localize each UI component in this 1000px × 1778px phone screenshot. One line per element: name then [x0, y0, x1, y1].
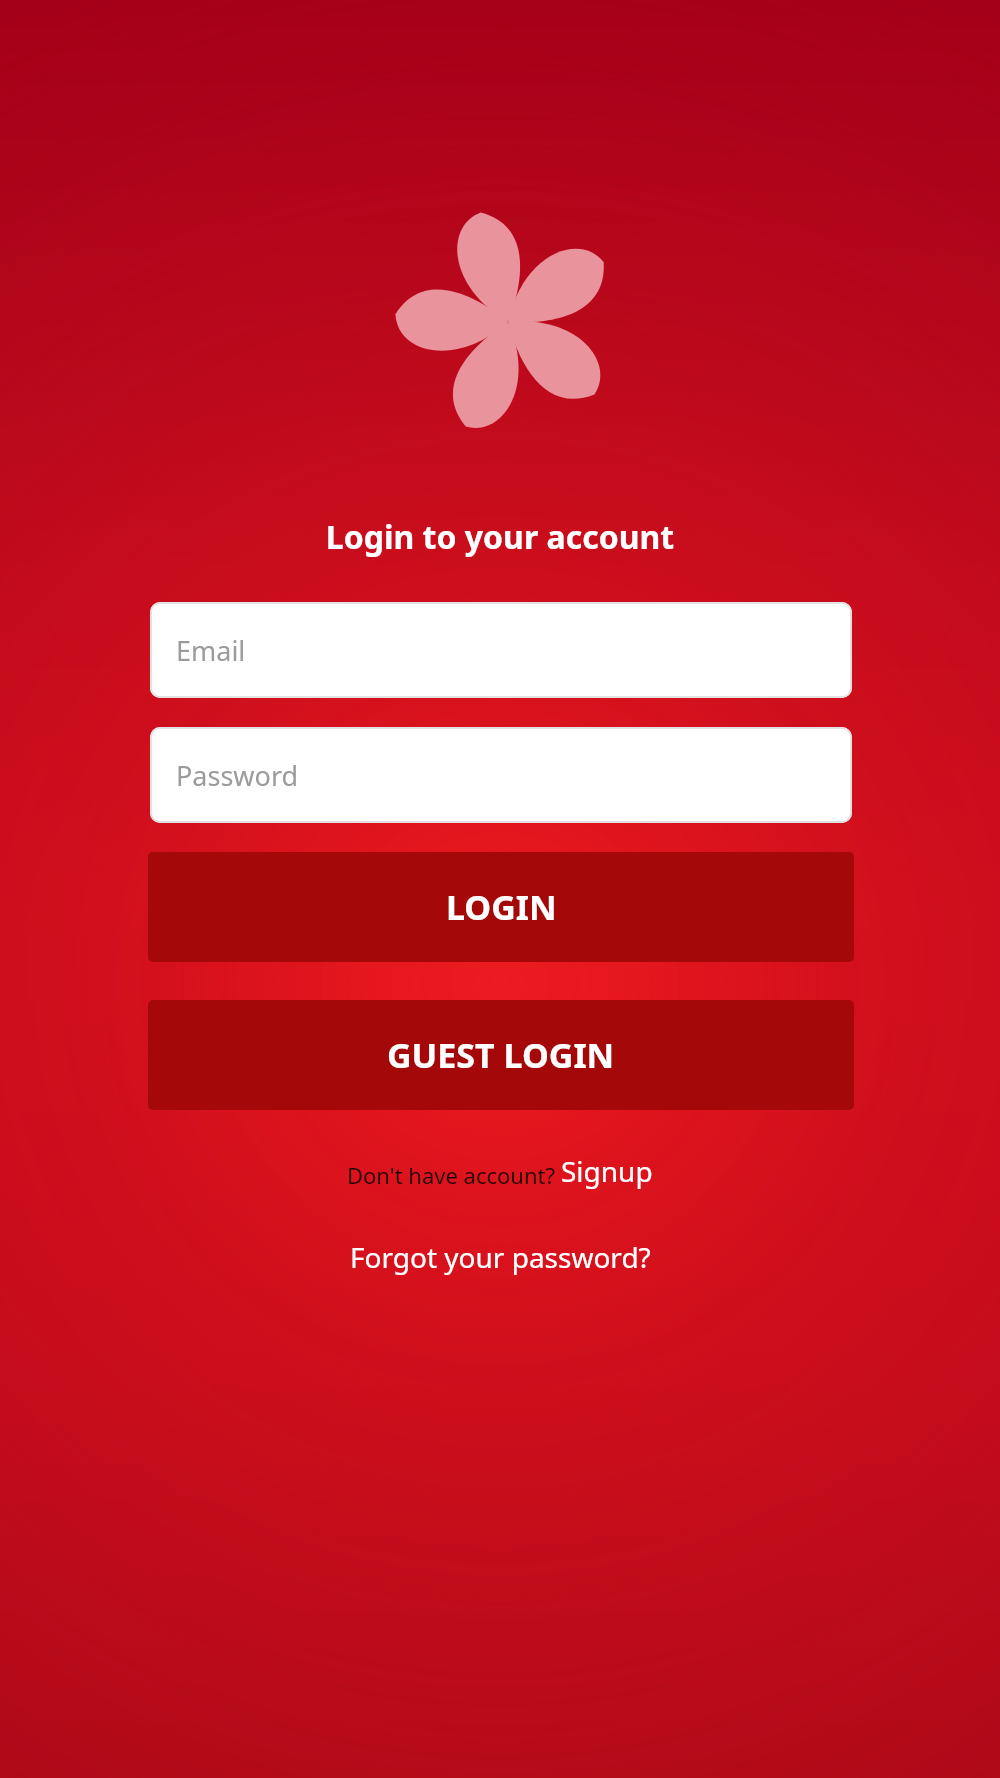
button[interactable]: Password	[150, 727, 852, 823]
staticText: Email	[176, 632, 246, 669]
button[interactable]: Email	[150, 602, 852, 698]
staticText: LOGIN	[446, 884, 557, 930]
staticText: Forgot your password?	[350, 1238, 651, 1276]
staticText: GUEST LOGIN	[387, 1032, 615, 1078]
button[interactable]: LOGIN	[148, 852, 854, 962]
button[interactable]: Forgot your password?	[338, 1232, 663, 1282]
other: App logo	[388, 202, 628, 442]
staticText: Login to your account	[0, 515, 1000, 559]
staticText: Signup	[561, 1152, 653, 1190]
button[interactable]: GUEST LOGIN	[148, 1000, 854, 1110]
button[interactable]: Signup	[561, 1152, 653, 1190]
staticText: Don't have account?	[347, 1160, 561, 1190]
staticText: Password	[176, 757, 299, 794]
